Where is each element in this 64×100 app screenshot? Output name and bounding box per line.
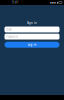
button[interactable]: Log in: [4, 42, 59, 48]
button[interactable]: Email: [4, 26, 59, 32]
staticText: 9:41: [12, 1, 19, 4]
staticText: ◗: [57, 1, 58, 4]
staticText: Email: [6, 28, 12, 31]
staticText: Password: [6, 35, 18, 38]
staticText: Log in: [27, 43, 36, 46]
staticText: Sign in: [27, 21, 37, 25]
button[interactable]: Password: [4, 34, 59, 39]
staticText: ▪▪▪: [50, 1, 56, 4]
